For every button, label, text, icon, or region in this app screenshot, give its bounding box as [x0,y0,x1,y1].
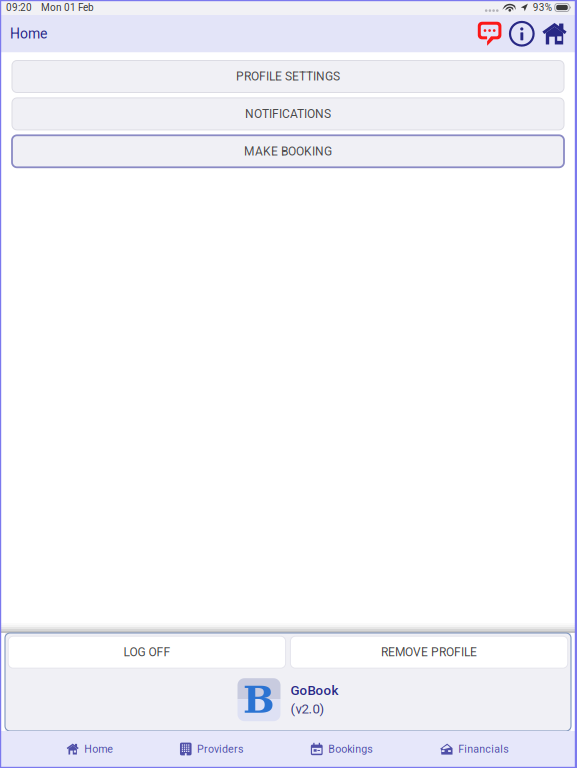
button[interactable]: Home [538,23,571,45]
button[interactable]: MAKE BOOKING [12,135,564,167]
staticText: (v2.0) [290,701,324,717]
staticText: Home [84,743,113,755]
button[interactable]: PROFILE SETTINGS [12,60,564,92]
staticText: MAKE BOOKING [244,144,332,158]
staticText: GoBook [290,683,338,698]
staticText: B [243,678,275,722]
staticText: NOTIFICATIONS [245,107,331,121]
button[interactable]: NOTIFICATIONS [12,98,564,130]
staticText: REMOVE PROFILE [381,645,477,659]
button[interactable]: Bookings [311,731,373,767]
staticText: Providers [197,743,244,755]
button[interactable]: Home [67,731,113,767]
button[interactable]: Information [506,22,538,46]
button[interactable]: LOG OFF [8,636,286,668]
staticText: Financials [458,743,509,755]
staticText: PROFILE SETTINGS [236,69,340,84]
staticText: Home [10,25,47,42]
button[interactable]: Providers [180,731,244,767]
button[interactable]: Financials [440,731,509,767]
staticText: Mon 01 Feb [41,2,94,13]
button[interactable]: REMOVE PROFILE [290,636,568,668]
button[interactable]: Messages [474,22,506,46]
staticText: 09:20 [6,2,32,13]
staticText: 93% [533,2,552,13]
staticText: Bookings [328,743,373,755]
staticText: LOG OFF [123,645,170,659]
